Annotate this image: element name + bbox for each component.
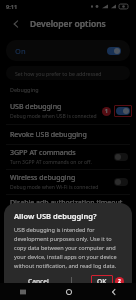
- button[interactable]: Cancel: [24, 275, 53, 288]
- button[interactable]: Toggle: [116, 107, 130, 115]
- staticText: Debugging: [10, 86, 39, 93]
- staticText: Set how you prefer to be addressed: [15, 70, 102, 77]
- staticText: Include additional device-specific vendo…: [10, 273, 117, 280]
- staticText: Turn 3GPP AT commands on or off.: [10, 159, 92, 166]
- button[interactable]: Back: [91, 283, 136, 300]
- staticText: Wireless debugging: [10, 173, 76, 183]
- button[interactable]: Set how you prefer to be addressed: [6, 66, 130, 80]
- button[interactable]: Back: [8, 16, 24, 32]
- button[interactable]: Home: [46, 283, 91, 300]
- button[interactable]: On: [6, 40, 130, 61]
- staticText: 9:11: [6, 3, 18, 11]
- staticText: Disable adb authorization timeout: [10, 198, 123, 208]
- button[interactable]: USB debugging: [10, 98, 132, 124]
- button[interactable]: Toggle: [107, 47, 121, 55]
- staticText: 2: [118, 278, 121, 285]
- button[interactable]: Toggle: [114, 153, 128, 161]
- button[interactable]: Recents: [0, 283, 46, 300]
- staticText: USB debugging: [10, 102, 62, 112]
- button[interactable]: OK: [91, 275, 113, 288]
- button[interactable]: Revoke USB debugging authorizations: [10, 125, 128, 144]
- button[interactable]: Back: [91, 283, 136, 300]
- staticText: 3GPP AT commands: [10, 148, 76, 158]
- button[interactable]: Toggle: [114, 178, 128, 186]
- staticText: Developer options: [30, 18, 106, 30]
- button[interactable]: 3GPP AT commands: [10, 145, 128, 169]
- button[interactable]: Include additional device-specific vendo…: [10, 270, 128, 283]
- button[interactable]: Home: [46, 283, 91, 300]
- button[interactable]: Disable adb authorization timeout: [10, 195, 128, 219]
- button[interactable]: Wireless debugging: [10, 170, 128, 194]
- staticText: Cancel: [28, 277, 49, 286]
- staticText: Debug mode when Wi-Fi is connected: [10, 184, 99, 191]
- staticText: 1: [105, 108, 108, 115]
- staticText: Debug mode when USB is connected: [10, 113, 97, 120]
- staticText: USB debugging is intended for developmen…: [14, 226, 124, 269]
- staticText: Revoke USB debugging authorizations: [10, 130, 128, 140]
- button[interactable]: Recents: [0, 283, 46, 300]
- button[interactable]: USB debugging toggle: [116, 107, 130, 115]
- staticText: OK: [97, 277, 107, 286]
- staticText: Allow USB debugging?: [14, 211, 97, 221]
- staticText: On: [15, 46, 26, 56]
- staticText: Disable automatic revocation of adb: [10, 209, 95, 216]
